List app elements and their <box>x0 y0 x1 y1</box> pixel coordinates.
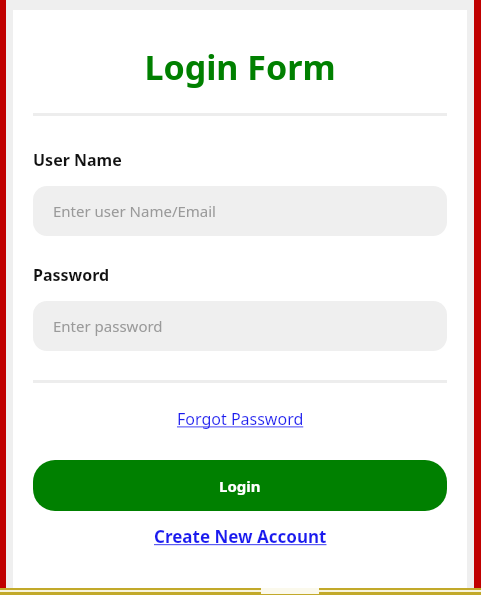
staticText: Enter password <box>53 316 163 336</box>
staticText: Password <box>33 264 110 286</box>
staticText: Forgot Password <box>177 408 304 430</box>
staticText: Login <box>219 476 261 496</box>
button[interactable]: Login <box>33 460 447 511</box>
staticText: Create New Account <box>154 525 327 548</box>
button[interactable]: Create New Account <box>13 525 467 548</box>
button[interactable]: Forgot Password <box>13 408 467 430</box>
staticText: Enter user Name/Email <box>53 201 216 221</box>
button[interactable]: Enter password <box>33 301 447 351</box>
button[interactable]: Enter user Name/Email <box>33 186 447 236</box>
staticText: Login Form <box>13 44 467 90</box>
staticText: User Name <box>33 149 122 171</box>
